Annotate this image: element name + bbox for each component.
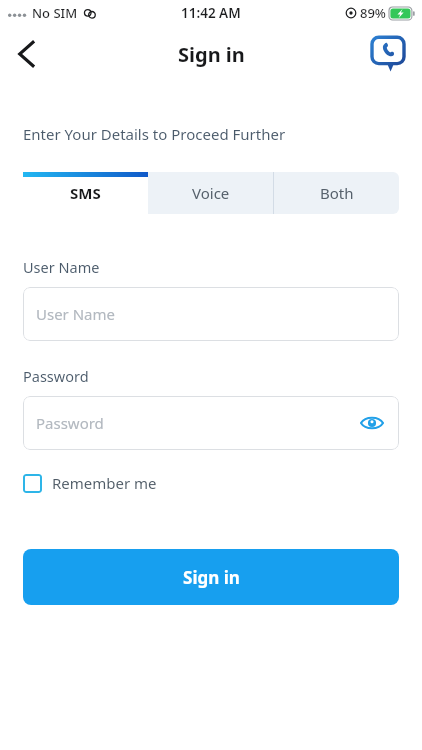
staticText: Both bbox=[320, 183, 354, 203]
staticText: Sign in bbox=[183, 566, 240, 589]
button[interactable]: Contact support bbox=[366, 32, 410, 76]
button[interactable]: User Name bbox=[23, 287, 399, 341]
staticText: User Name bbox=[36, 304, 116, 324]
button[interactable]: Show password bbox=[355, 406, 389, 440]
button[interactable]: SMS bbox=[23, 172, 148, 214]
staticText: User Name bbox=[23, 257, 100, 277]
staticText: 89% bbox=[360, 4, 386, 22]
staticText: No SIM bbox=[32, 4, 78, 22]
staticText: SMS bbox=[70, 183, 101, 203]
button[interactable]: Remember me bbox=[23, 466, 157, 500]
staticText: Voice bbox=[192, 183, 230, 203]
staticText: Sign in bbox=[178, 41, 245, 68]
staticText: 11:42 AM bbox=[181, 4, 241, 22]
staticText: Remember me bbox=[52, 473, 157, 493]
button[interactable]: Back bbox=[4, 32, 48, 76]
staticText: Password bbox=[23, 366, 89, 386]
staticText: Password bbox=[36, 413, 104, 433]
button[interactable]: Sign in bbox=[23, 549, 399, 605]
button[interactable]: Password bbox=[23, 396, 399, 450]
staticText: Enter Your Details to Proceed Further bbox=[23, 124, 286, 144]
button[interactable]: Both bbox=[274, 172, 399, 214]
button[interactable]: Voice bbox=[148, 172, 273, 214]
